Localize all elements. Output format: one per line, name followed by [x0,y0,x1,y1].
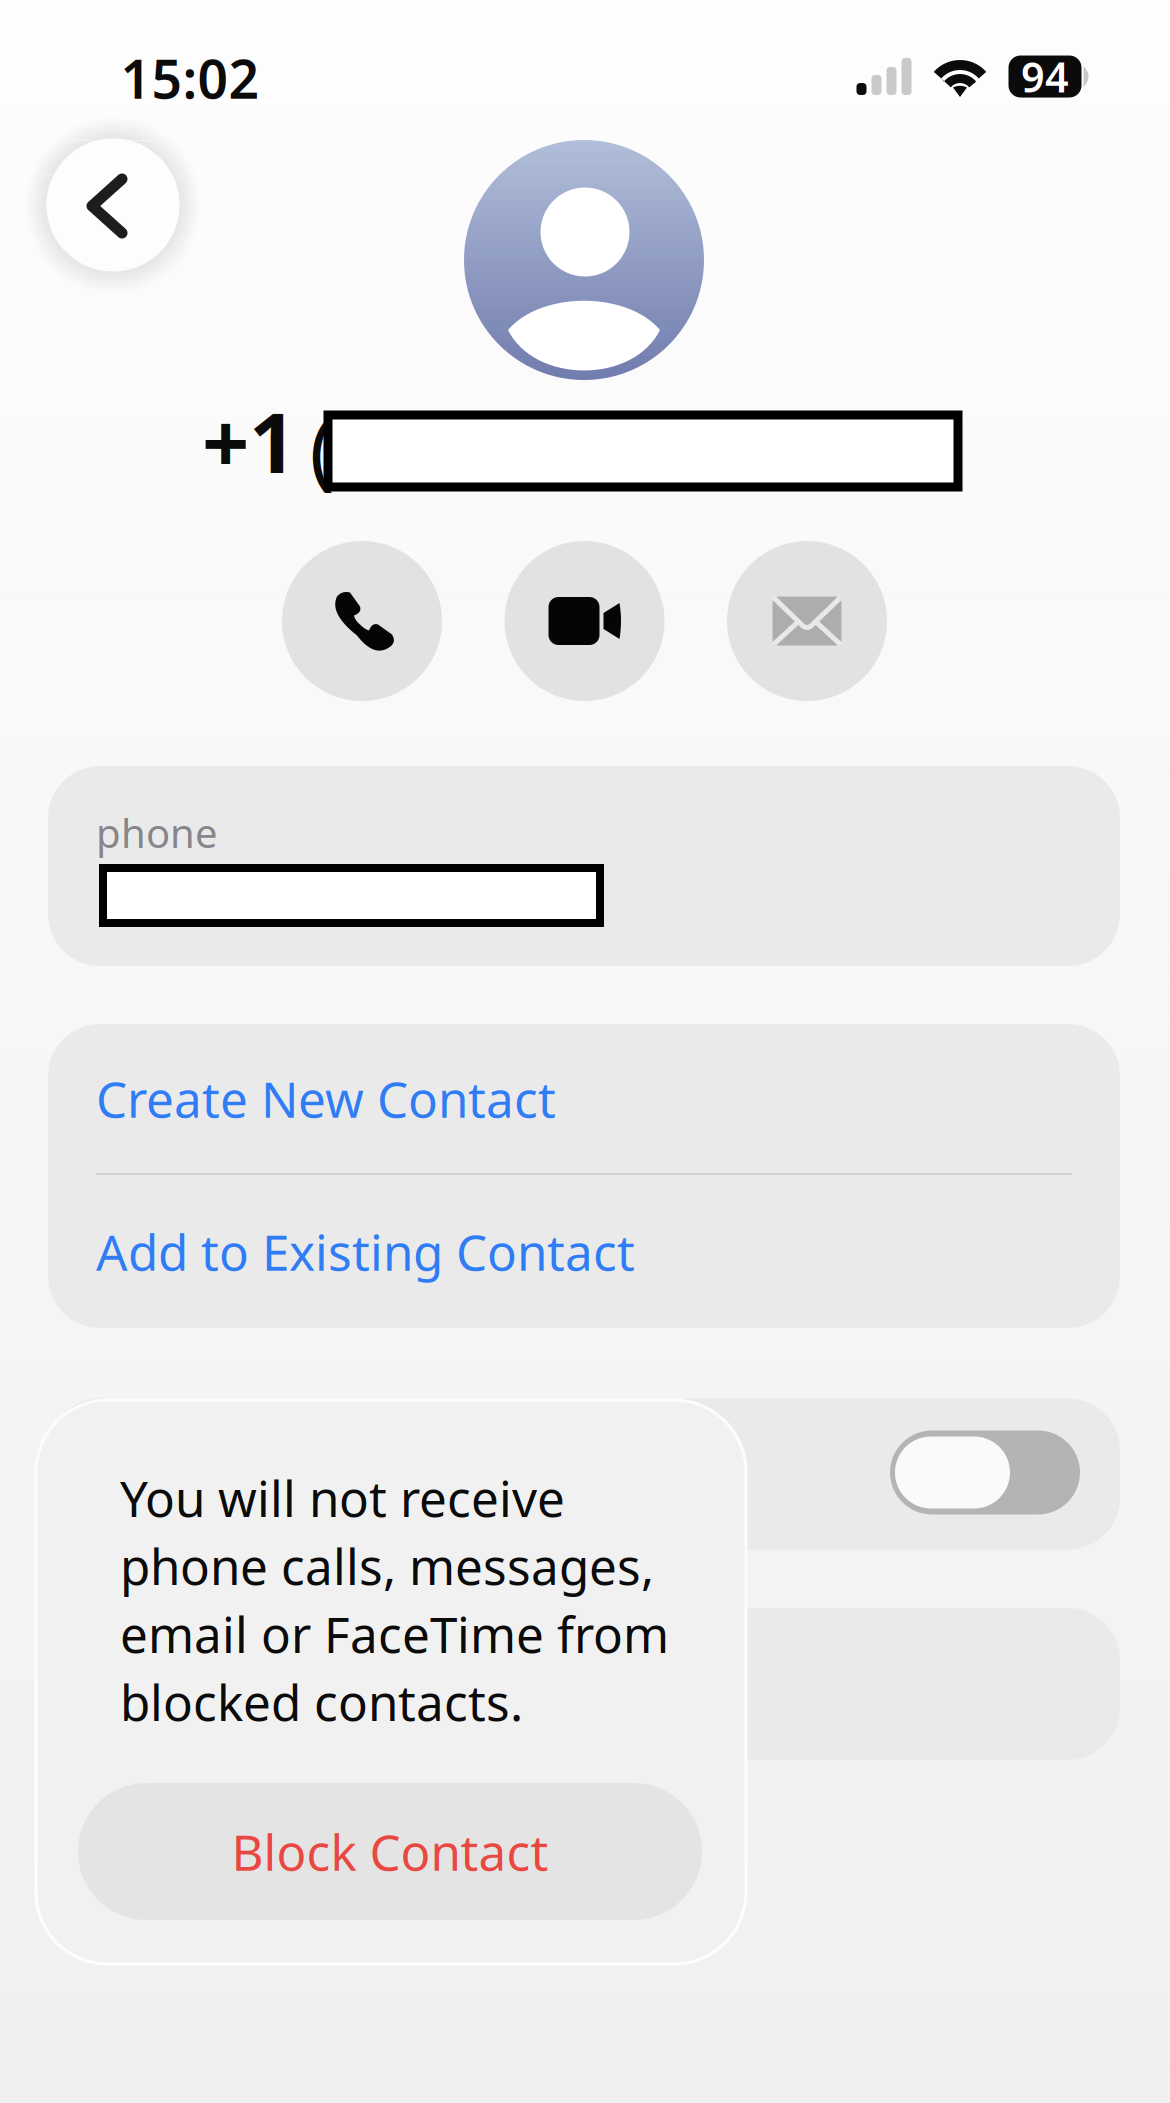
staticText: email or FaceTime from [120,1601,669,1666]
button[interactable]: Block Contact [78,1783,702,1920]
button[interactable]: Call [282,541,442,701]
staticText: Block Contact [231,1819,548,1884]
staticText: Create New Contact [96,1066,556,1131]
button[interactable]: Mail [727,541,887,701]
staticText: Add to Existing Contact [96,1219,635,1284]
staticText: +1 [202,386,296,496]
staticText: 15:02 [120,43,259,113]
button[interactable]: FaceTime [504,541,664,701]
button[interactable]: Create New Contact [48,1024,1120,1173]
staticText: ( [309,393,334,503]
staticText: 94 [1021,49,1069,104]
button[interactable]: Back [46,138,179,271]
button[interactable]: Add to Existing Contact [48,1175,1120,1328]
staticText: phone calls, messages, [120,1533,654,1598]
staticText: blocked contacts. [120,1669,523,1734]
staticText: You will not receive [120,1465,565,1530]
staticText: phone [96,806,218,859]
